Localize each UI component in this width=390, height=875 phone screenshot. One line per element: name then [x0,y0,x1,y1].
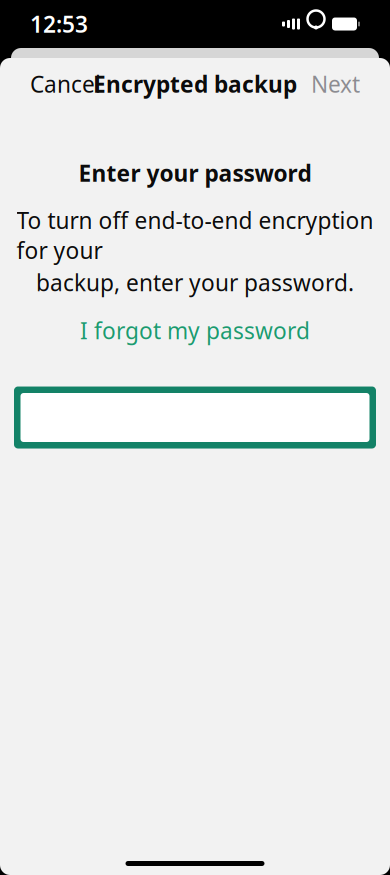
staticText: 12:53 [30,9,88,39]
staticText: Next [311,69,360,99]
staticText: To turn off end-to-end encryption for yo… [16,205,373,265]
staticText: Encrypted backup [93,69,297,99]
button[interactable]: Next [301,61,370,107]
staticText: Cancel [30,69,101,99]
button[interactable]: I forgot my password [72,311,318,349]
button[interactable]: Cancel [20,61,111,107]
staticText: I forgot my password [80,315,310,345]
staticText: Enter your password [78,158,311,188]
staticText: backup, enter your password. [36,267,354,297]
button[interactable]: Password [0,386,390,448]
